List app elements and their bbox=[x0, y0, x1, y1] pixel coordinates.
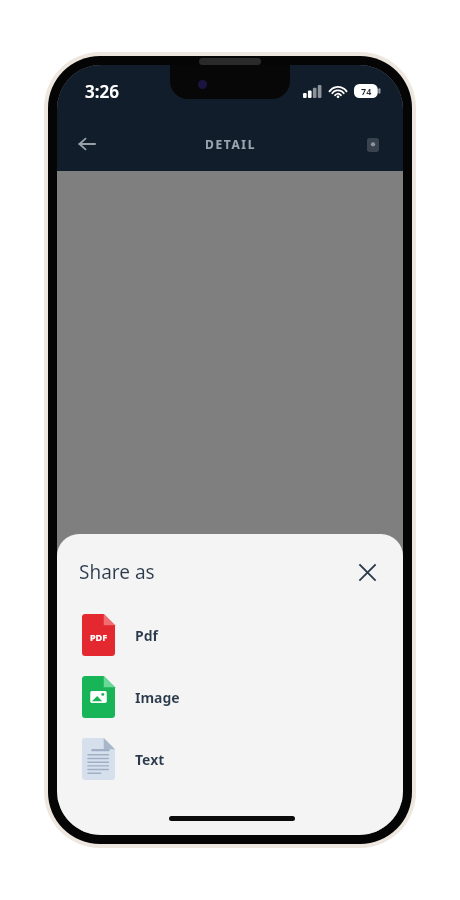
staticText: I never had no love, never had no love bbox=[105, 807, 266, 819]
staticText: I'm just a poor boy, I'm just a poor boy bbox=[105, 735, 267, 747]
button[interactable]: Close bbox=[349, 554, 385, 590]
staticText: 74 bbox=[361, 85, 372, 97]
staticText: I never had no love, never had no love bbox=[105, 771, 266, 783]
staticText: Pdf bbox=[135, 626, 158, 645]
staticText: Write a rap Song lyrics about bbox=[105, 705, 227, 717]
staticText: I never had no friends, never had no fri… bbox=[105, 759, 291, 771]
button[interactable]: Image bbox=[79, 670, 385, 724]
staticText: I never had no money, never had no money bbox=[105, 747, 289, 759]
button[interactable]: Back bbox=[65, 122, 109, 166]
button[interactable]: PDF bbox=[79, 608, 385, 662]
button[interactable]: Delete bbox=[353, 124, 393, 164]
staticText: Image bbox=[135, 688, 180, 707]
staticText: Share as bbox=[79, 559, 155, 585]
staticText: DETAIL bbox=[205, 136, 256, 152]
button[interactable]: Text bbox=[79, 732, 385, 786]
staticText: PDF bbox=[90, 631, 108, 643]
staticText: Text bbox=[135, 750, 165, 769]
staticText: 3:26 bbox=[85, 80, 119, 103]
